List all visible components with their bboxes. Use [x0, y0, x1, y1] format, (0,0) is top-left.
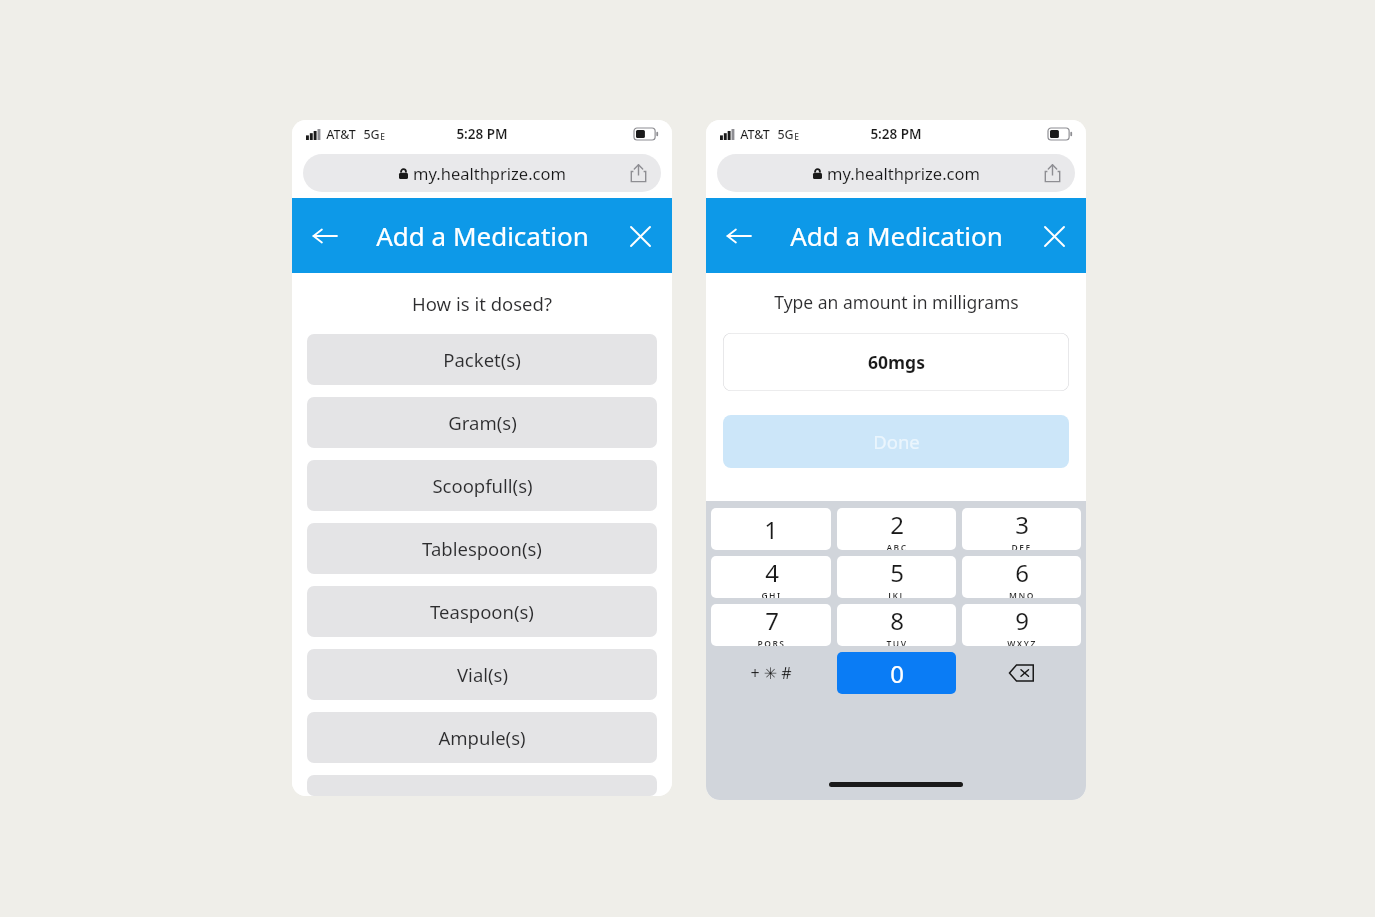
- button[interactable]: 0: [837, 652, 956, 694]
- staticText: Packet(s): [443, 347, 521, 372]
- staticText: 1: [764, 513, 778, 546]
- staticText: PQRS: [757, 638, 786, 646]
- staticText: my.healthprize.com: [827, 162, 980, 184]
- button[interactable]: 8: [837, 604, 956, 646]
- button[interactable]: Close: [1033, 215, 1075, 257]
- button[interactable]: my.healthprize.com: [303, 154, 661, 192]
- staticText: MNO: [1009, 590, 1035, 598]
- button[interactable]: my.healthprize.com: [717, 154, 1075, 192]
- staticText: Vial(s): [457, 662, 508, 687]
- staticText: 6: [1015, 556, 1029, 589]
- staticText: 5G: [777, 126, 794, 143]
- button[interactable]: 5: [837, 556, 956, 598]
- staticText: 4: [765, 556, 779, 589]
- staticText: Type an amount in milligrams: [774, 290, 1019, 314]
- button[interactable]: Scoopfull(s): [307, 460, 657, 511]
- button[interactable]: Teaspoon(s): [307, 586, 657, 637]
- button[interactable]: 9: [962, 604, 1081, 646]
- staticText: Teaspoon(s): [430, 599, 534, 624]
- staticText: Add a Medication: [790, 218, 1003, 253]
- button[interactable]: Share: [1041, 162, 1063, 184]
- button[interactable]: Packet(s): [307, 334, 657, 385]
- button[interactable]: 60mgs: [723, 333, 1069, 391]
- staticText: 5: [890, 556, 904, 589]
- staticText: TUV: [886, 638, 908, 646]
- staticText: 60mgs: [868, 350, 925, 374]
- staticText: my.healthprize.com: [413, 162, 566, 184]
- staticText: Done: [873, 429, 920, 454]
- staticText: Ampule(s): [438, 725, 526, 750]
- button[interactable]: Close: [619, 215, 661, 257]
- staticText: Tablespoon(s): [422, 536, 542, 561]
- staticText: 9: [1015, 604, 1029, 637]
- staticText: 5:28 PM: [456, 125, 508, 143]
- button[interactable]: Vial(s): [307, 649, 657, 700]
- staticText: AT&T: [740, 126, 770, 143]
- staticText: ABC: [886, 542, 908, 550]
- staticText: 3: [1015, 508, 1029, 541]
- staticText: Scoopfull(s): [432, 473, 533, 498]
- staticText: JKL: [888, 590, 906, 598]
- button[interactable]: 1: [711, 508, 831, 550]
- staticText: 5G: [363, 126, 380, 143]
- button[interactable]: Delete: [962, 652, 1081, 694]
- staticText: 5:28 PM: [870, 125, 922, 143]
- staticText: How is it dosed?: [412, 291, 552, 316]
- staticText: E: [380, 131, 385, 143]
- button[interactable]: 4: [711, 556, 831, 598]
- staticText: Gram(s): [448, 410, 517, 435]
- staticText: 0: [890, 657, 904, 690]
- staticText: 8: [890, 604, 904, 637]
- staticText: 2: [890, 508, 904, 541]
- staticText: 7: [765, 604, 779, 637]
- button[interactable]: Share: [627, 162, 649, 184]
- button[interactable]: Gram(s): [307, 397, 657, 448]
- button[interactable]: Back: [303, 214, 347, 258]
- staticText: DEF: [1011, 542, 1032, 550]
- staticText: + ✳ #: [750, 662, 792, 684]
- button[interactable]: 2: [837, 508, 956, 550]
- staticText: WXYZ: [1007, 638, 1037, 646]
- staticText: Add a Medication: [376, 218, 589, 253]
- staticText: GHI: [761, 590, 782, 598]
- button[interactable]: Tablespoon(s): [307, 523, 657, 574]
- button[interactable]: 7: [711, 604, 831, 646]
- button[interactable]: Symbols: [711, 652, 831, 694]
- button[interactable]: Back: [717, 214, 761, 258]
- button[interactable]: 3: [962, 508, 1081, 550]
- button[interactable]: Ampule(s): [307, 712, 657, 763]
- staticText: E: [794, 131, 799, 143]
- staticText: AT&T: [326, 126, 356, 143]
- button[interactable]: 6: [962, 556, 1081, 598]
- button[interactable]: Done: [723, 415, 1069, 468]
